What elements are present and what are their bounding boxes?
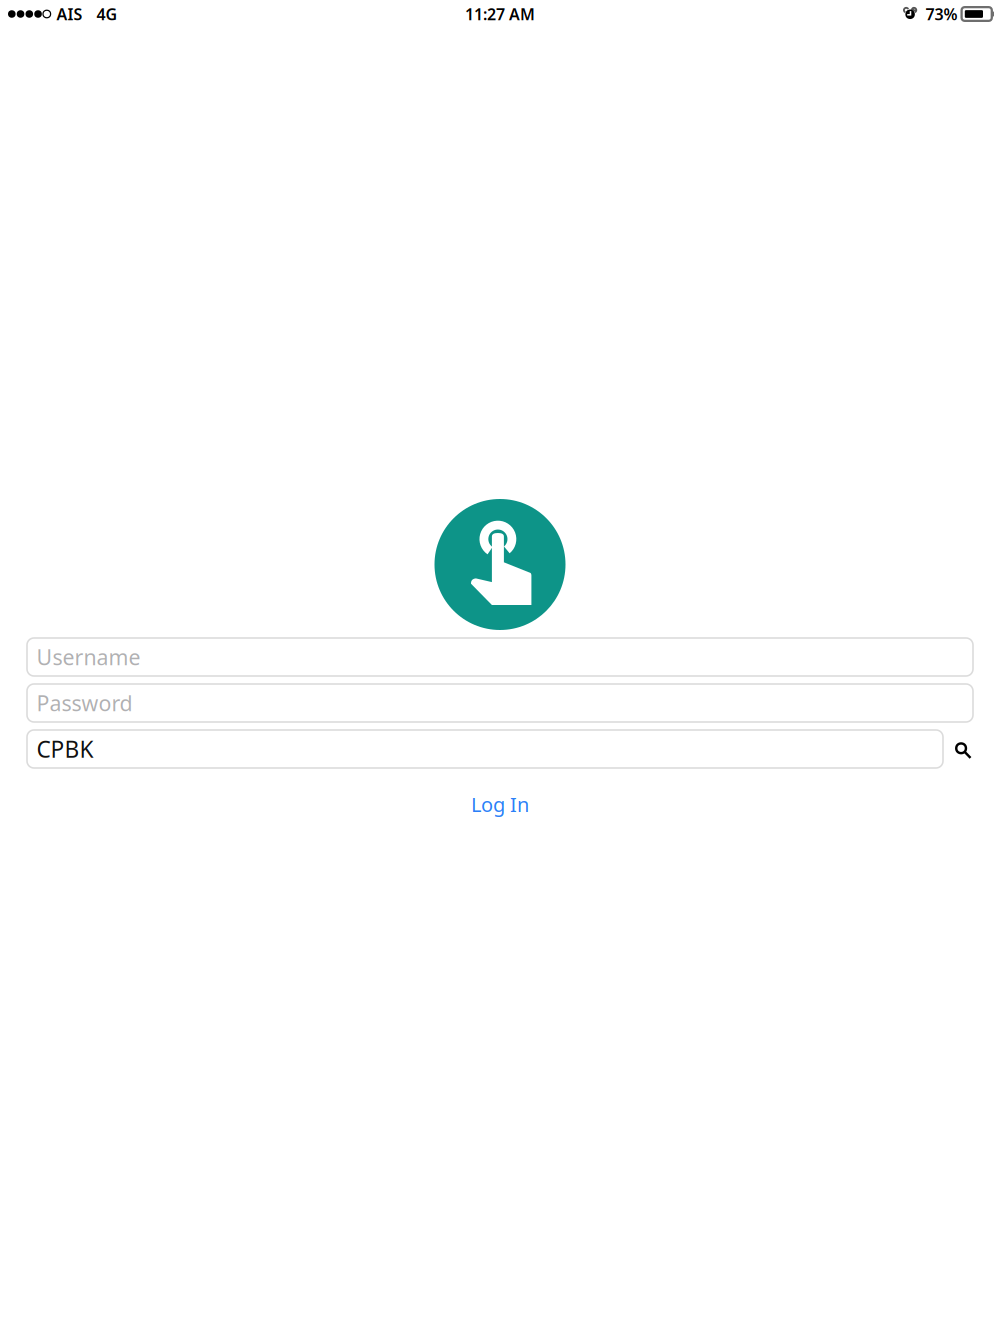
staticText: Password [36, 689, 132, 717]
staticText: 73% [926, 3, 958, 25]
staticText: AIS [57, 3, 83, 25]
staticText: 11:27 AM [465, 3, 535, 25]
button[interactable]: Username [27, 638, 973, 676]
button[interactable]: CPBK [27, 730, 943, 768]
staticText: Log In [471, 791, 529, 818]
button[interactable]: Log In [390, 783, 610, 826]
button[interactable]: Search [943, 730, 973, 768]
staticText: CPBK [36, 734, 93, 764]
staticText: Username [36, 643, 140, 671]
button[interactable]: Password [27, 684, 973, 722]
staticText: 4G [97, 3, 118, 25]
